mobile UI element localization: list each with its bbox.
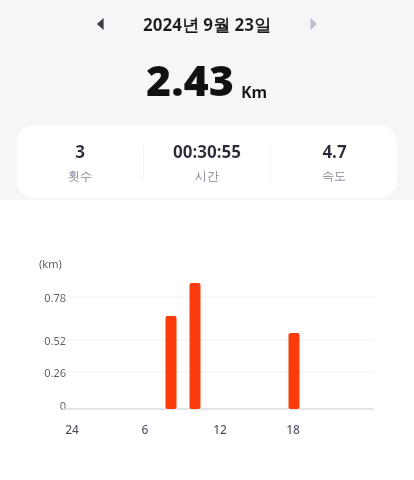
staticText: 시간: [195, 168, 219, 183]
staticText: 0.52: [22, 333, 66, 348]
button[interactable]: 3: [17, 125, 397, 198]
button[interactable]: Next day: [297, 8, 329, 40]
staticText: 0.78: [22, 290, 66, 305]
staticText: 6: [125, 421, 165, 437]
staticText: (km): [39, 256, 62, 271]
staticText: 0: [22, 398, 66, 413]
staticText: 4.7: [322, 140, 347, 163]
button[interactable]: Previous day: [85, 8, 117, 40]
staticText: 횟수: [68, 168, 92, 183]
staticText: 2024년 9월 23일: [143, 13, 271, 36]
staticText: 0.26: [22, 365, 66, 380]
staticText: 3: [75, 140, 85, 163]
staticText: 12: [200, 421, 240, 437]
staticText: 24: [52, 421, 92, 437]
staticText: 18: [273, 421, 313, 437]
staticText: Km: [241, 81, 268, 103]
staticText: 속도: [322, 168, 346, 183]
staticText: 00:30:55: [173, 140, 241, 163]
staticText: 2.43: [146, 50, 235, 109]
